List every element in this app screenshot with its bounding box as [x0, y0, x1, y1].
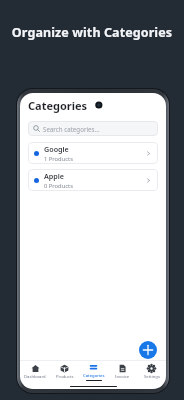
button[interactable]: Search categories... [28, 121, 158, 136]
staticText: Settings [144, 374, 160, 380]
staticText: Search categories... [43, 125, 100, 133]
button[interactable]: Invoice [108, 361, 137, 383]
button[interactable]: Google [28, 142, 158, 164]
staticText: Dashboard [24, 374, 46, 380]
button[interactable]: Categories [79, 361, 108, 383]
staticText: Apple [44, 171, 65, 181]
staticText: Categories [83, 373, 105, 379]
button[interactable]: Products [50, 361, 79, 383]
button[interactable]: Settings [137, 361, 166, 383]
staticText: Categories [28, 98, 88, 113]
staticText: Invoice [115, 374, 130, 380]
button[interactable]: Add category [139, 341, 157, 359]
staticText: Products [56, 374, 74, 380]
staticText: Google [44, 144, 69, 154]
button[interactable]: Apple [28, 169, 158, 191]
staticText: 0 Products [44, 182, 73, 190]
staticText: Organize with Categories [0, 24, 184, 41]
staticText: 1 Products [44, 155, 73, 163]
button[interactable]: Dashboard [20, 361, 50, 383]
